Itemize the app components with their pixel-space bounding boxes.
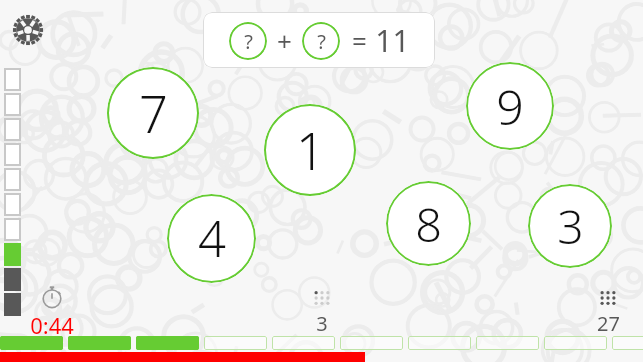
staticText: 3	[316, 310, 328, 337]
button[interactable]	[204, 336, 267, 350]
button[interactable]: 0:44	[22, 286, 82, 340]
staticText: =	[352, 23, 367, 58]
button[interactable]: 3	[292, 289, 352, 337]
staticText: +	[277, 23, 292, 58]
staticText: 27	[597, 310, 620, 337]
button[interactable]: 7	[107, 67, 199, 159]
button[interactable]: Unknown operand	[302, 22, 340, 60]
button[interactable]: 27	[580, 289, 636, 337]
staticText: 4	[198, 205, 226, 272]
staticText: 9	[496, 73, 524, 139]
button[interactable]: 9	[466, 62, 554, 150]
button[interactable]	[544, 336, 607, 350]
button[interactable]	[476, 336, 539, 350]
button[interactable]	[408, 336, 471, 350]
button[interactable]: 1	[264, 104, 356, 196]
button[interactable]	[68, 336, 131, 350]
button[interactable]: Unknown operand	[229, 22, 267, 60]
staticText: 1	[296, 116, 325, 185]
button[interactable]	[272, 336, 335, 350]
button[interactable]	[0, 336, 63, 350]
button[interactable]	[612, 336, 643, 350]
staticText: 7	[139, 79, 168, 148]
staticText: 11	[375, 20, 410, 61]
staticText: ?	[317, 28, 326, 55]
staticText: 8	[415, 192, 442, 256]
button[interactable]	[340, 336, 403, 350]
button[interactable]: Settings	[8, 10, 48, 50]
button[interactable]: 8	[386, 181, 471, 266]
button[interactable]	[136, 336, 199, 350]
staticText: 0:44	[30, 310, 74, 340]
button[interactable]: 3	[528, 184, 612, 268]
button[interactable]: 4	[167, 194, 256, 283]
button[interactable]: Unknown operand	[203, 12, 435, 68]
staticText: ?	[244, 28, 253, 55]
staticText: 3	[557, 195, 584, 258]
